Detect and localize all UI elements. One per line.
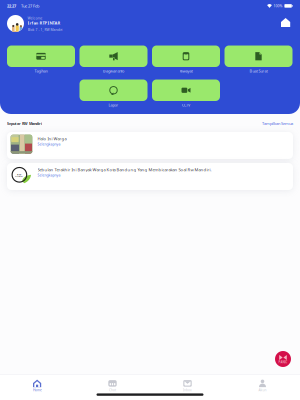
button[interactable]: Lapor: [79, 79, 147, 108]
button[interactable]: Tampilkan Semua: [262, 120, 293, 126]
staticText: PANIC: [278, 360, 287, 364]
button[interactable]: RW: [7, 163, 293, 190]
staticText: Riwayat: [179, 68, 192, 74]
staticText: RW: [17, 173, 21, 176]
staticText: Lapor: [108, 102, 118, 108]
staticText: Tue 27 Feb: [21, 3, 39, 9]
button[interactable]: Halo Ini Warga: [7, 132, 293, 159]
staticText: Sebulan Terakhir Ini Banyak Warga Kota B…: [37, 167, 211, 172]
staticText: 100%: [273, 3, 282, 8]
staticText: Tampilkan Semua: [262, 121, 293, 126]
staticText: Tagihan: [34, 68, 47, 74]
staticText: Buat Surat: [249, 68, 267, 74]
staticText: Akun: [258, 388, 266, 392]
button[interactable]: Bagikan Info: [79, 45, 147, 74]
staticText: Inbox: [183, 388, 192, 392]
button[interactable]: Akun: [225, 380, 300, 392]
staticText: 22.27: [7, 3, 16, 9]
button[interactable]: Inbox: [150, 380, 225, 392]
staticText: Irfan RTPINTAR: [27, 20, 60, 26]
staticText: Seputar RW Mandiri: [7, 121, 42, 126]
button[interactable]: Home: [0, 380, 75, 392]
staticText: Selengkapnya: [37, 142, 60, 146]
staticText: Chat: [109, 388, 116, 392]
button[interactable]: Tagihan: [7, 45, 75, 74]
button[interactable]: Home: [281, 18, 293, 30]
staticText: Home: [33, 388, 42, 392]
staticText: CCTV: [182, 102, 190, 108]
button[interactable]: Buat Surat: [224, 45, 292, 74]
button[interactable]: Riwayat: [152, 45, 220, 74]
button[interactable]: Chat: [75, 380, 150, 392]
staticText: Welcome: [27, 16, 42, 20]
staticText: Blok 7 - 1, RW Mandiri: [27, 27, 62, 32]
button[interactable]: CCTV: [152, 79, 220, 108]
button[interactable]: Panic: [275, 351, 291, 367]
staticText: Selengkapnya: [37, 173, 60, 177]
staticText: Halo Ini Warga: [37, 136, 66, 141]
staticText: MANDIRI: [15, 175, 23, 178]
staticText: Bagikan Info: [103, 68, 124, 74]
